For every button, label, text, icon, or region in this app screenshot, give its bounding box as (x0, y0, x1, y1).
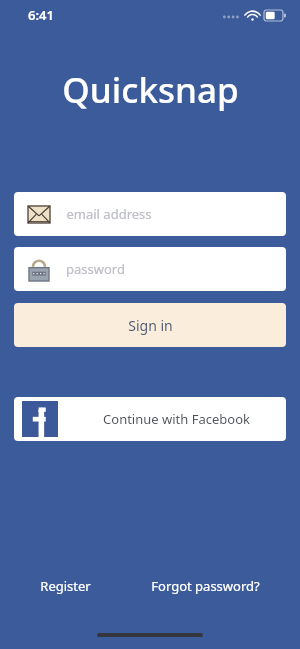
button[interactable]: Forgot password? (147, 573, 264, 599)
staticText: password (66, 260, 125, 278)
staticText: Continue with Facebook (103, 410, 250, 428)
button[interactable]: email address (14, 192, 286, 236)
button[interactable]: Register (36, 573, 95, 599)
staticText: Quicksnap (62, 66, 239, 114)
staticText: Sign in (128, 316, 173, 335)
staticText: Forgot password? (151, 577, 260, 595)
staticText: email address (66, 205, 152, 223)
button[interactable]: password (14, 247, 286, 291)
button[interactable]: Continue with Facebook (14, 397, 286, 441)
staticText: Register (40, 577, 91, 595)
staticText: 6:41 (28, 6, 54, 24)
button[interactable]: Sign in (14, 303, 286, 347)
